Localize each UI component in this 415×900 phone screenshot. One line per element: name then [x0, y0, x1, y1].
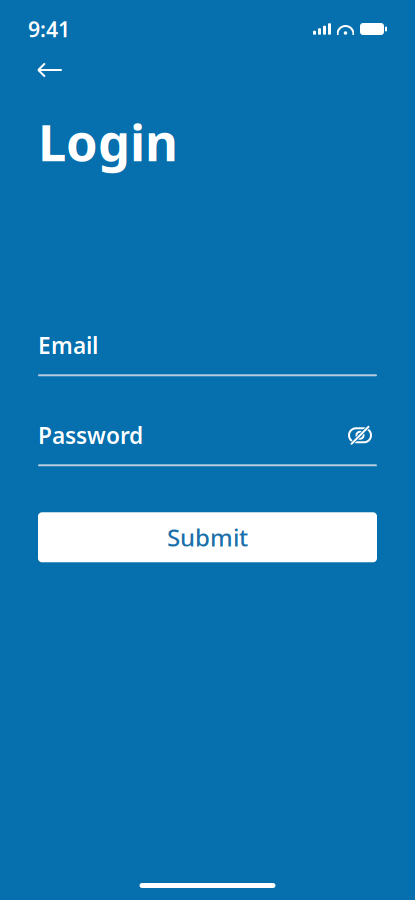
staticText: 9:41	[28, 15, 70, 43]
staticText: Login	[38, 108, 178, 175]
button[interactable]: Show password	[343, 421, 377, 449]
staticText: Email	[38, 330, 98, 360]
staticText: Submit	[167, 521, 248, 553]
staticText: Password	[38, 420, 143, 450]
button[interactable]: Back	[28, 52, 72, 88]
button[interactable]: Submit	[38, 512, 377, 562]
